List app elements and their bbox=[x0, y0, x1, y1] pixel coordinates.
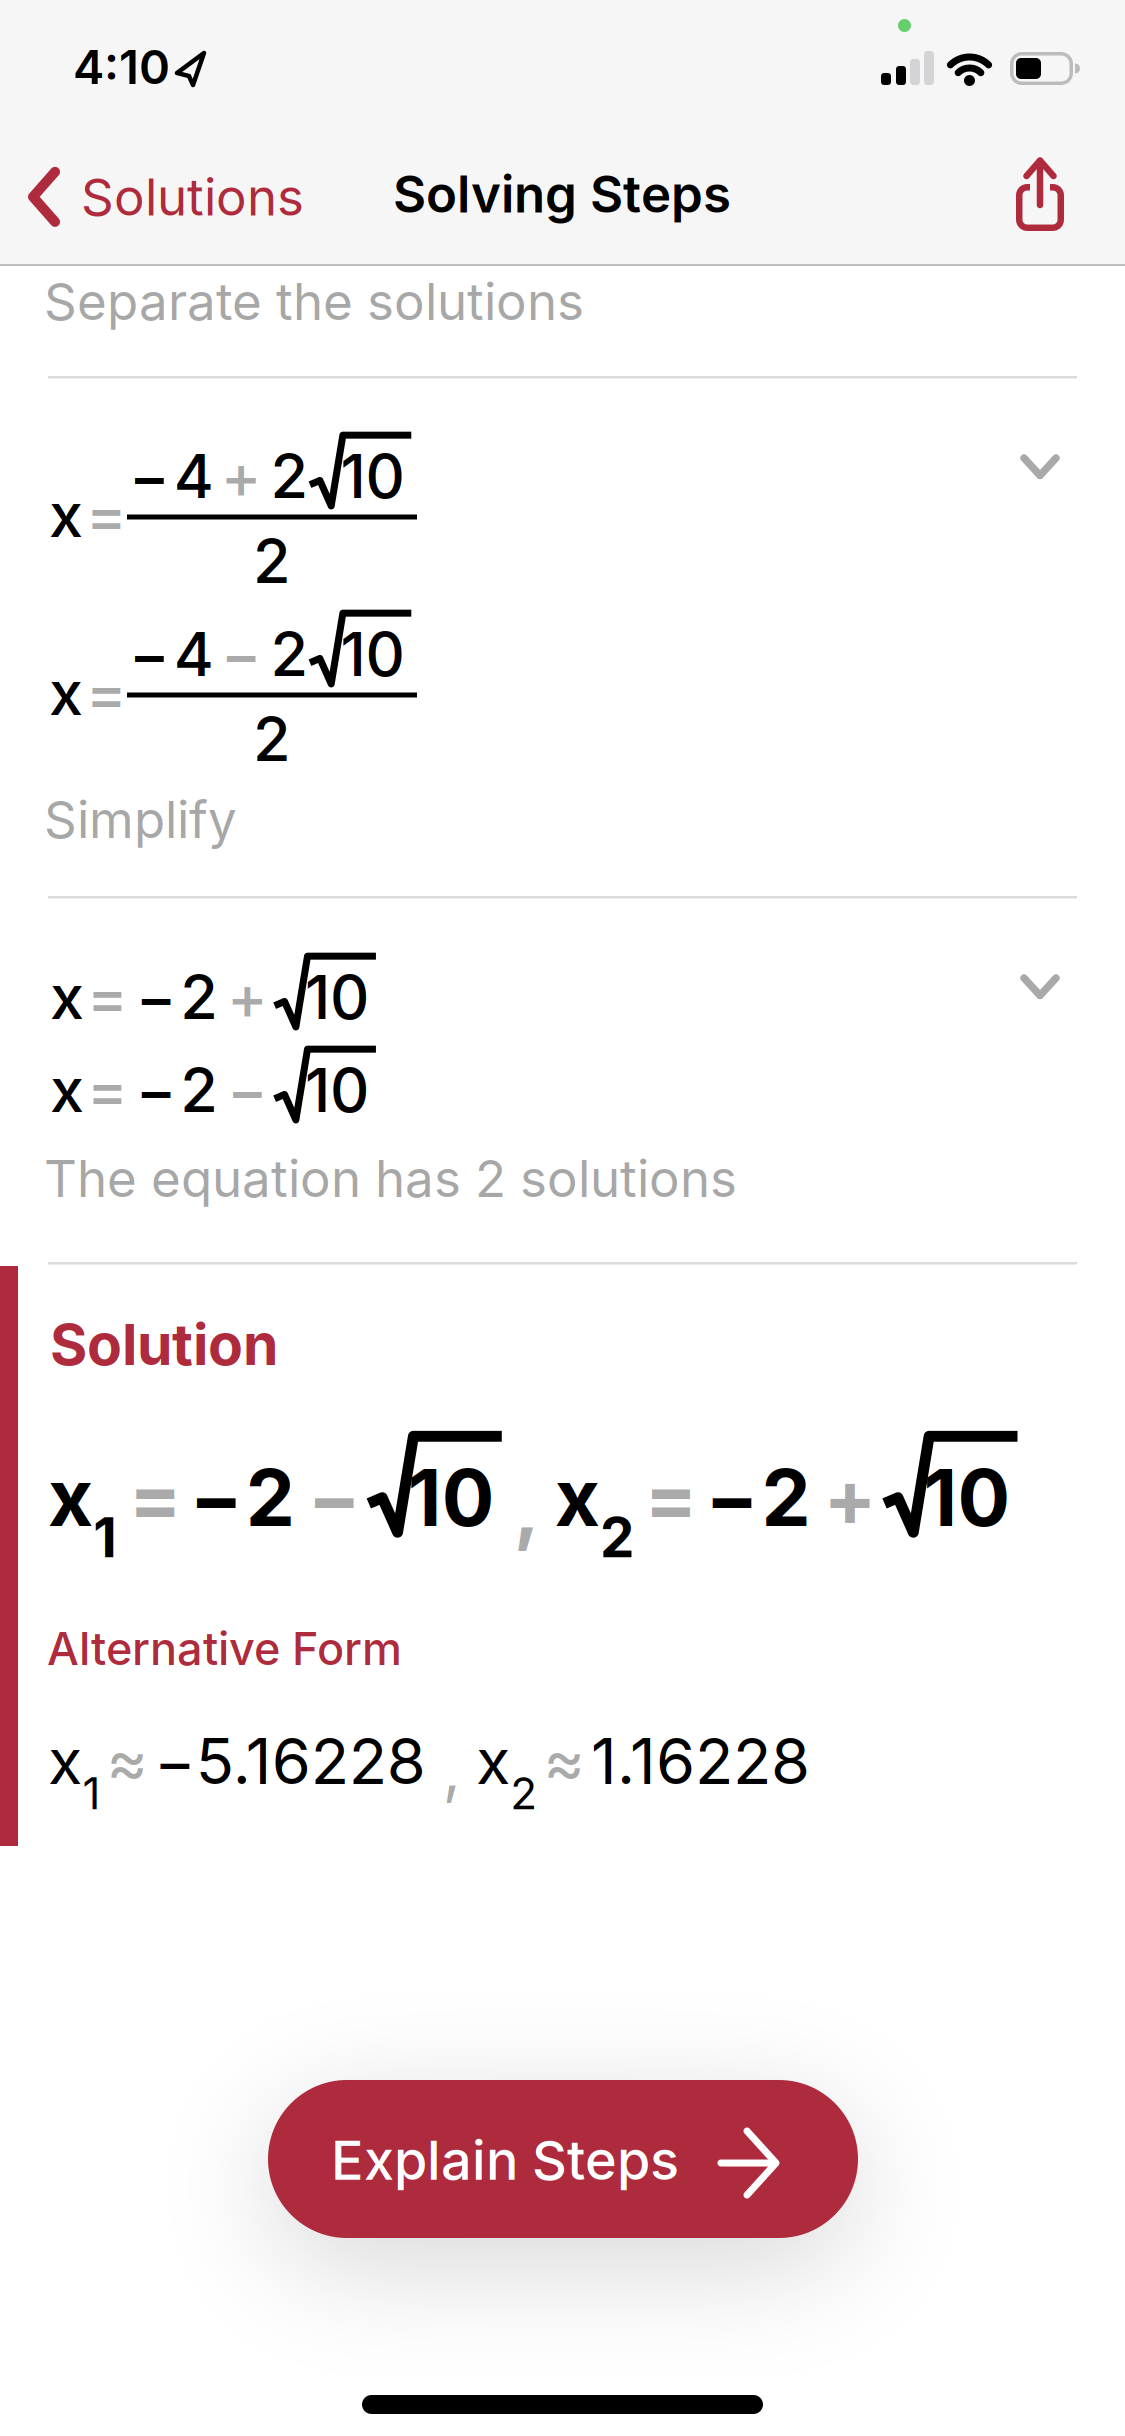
staticText: 2 bbox=[180, 1053, 218, 1127]
staticText: − bbox=[221, 617, 262, 691]
staticText: − bbox=[136, 1053, 177, 1127]
staticText: 10 bbox=[340, 439, 404, 513]
staticText: 4 bbox=[174, 617, 214, 691]
staticText: Separate the solutions bbox=[44, 271, 584, 332]
staticText: 5.16228 bbox=[196, 1723, 426, 1799]
staticText: 2 bbox=[270, 617, 308, 691]
staticText: 2 bbox=[253, 702, 291, 776]
staticText: 2 bbox=[180, 960, 218, 1034]
button[interactable]: Show step details bbox=[1020, 453, 1060, 480]
staticText: 2 bbox=[510, 1766, 537, 1820]
staticText: Solving Steps bbox=[393, 163, 731, 225]
staticText: x bbox=[48, 1723, 82, 1799]
staticText: 4 bbox=[174, 439, 214, 513]
staticText: − bbox=[136, 960, 177, 1034]
staticText: 10 bbox=[923, 1450, 1010, 1545]
staticText: − bbox=[190, 1450, 243, 1545]
button[interactable]: Show step details bbox=[1020, 973, 1060, 1000]
staticText: 1.16228 bbox=[591, 1723, 810, 1799]
staticText: 10 bbox=[305, 1053, 369, 1127]
staticText: = bbox=[86, 478, 127, 552]
staticText: x bbox=[50, 960, 84, 1034]
staticText: 2 bbox=[600, 1504, 634, 1570]
button[interactable]: Explain Steps bbox=[268, 2080, 858, 2238]
staticText: 2 bbox=[761, 1450, 810, 1545]
staticText: Explain Steps bbox=[331, 2127, 679, 2193]
staticText: 1 bbox=[93, 1504, 117, 1570]
staticText: 2 bbox=[246, 1450, 295, 1545]
staticText: + bbox=[227, 960, 268, 1034]
staticText: + bbox=[823, 1450, 876, 1545]
staticText: x bbox=[476, 1723, 510, 1799]
staticText: x bbox=[555, 1450, 600, 1545]
staticText: − bbox=[129, 617, 170, 691]
staticText: x bbox=[48, 1450, 93, 1545]
staticText: ≈ bbox=[106, 1723, 148, 1799]
staticText: The equation has 2 solutions bbox=[44, 1148, 737, 1209]
staticText: = bbox=[644, 1450, 697, 1545]
staticText: 2 bbox=[270, 439, 308, 513]
staticText: = bbox=[86, 656, 127, 730]
staticText: − bbox=[308, 1450, 361, 1545]
staticText: + bbox=[221, 439, 262, 513]
staticText: 10 bbox=[305, 960, 369, 1034]
staticText: 1 bbox=[82, 1766, 100, 1820]
staticText: − bbox=[227, 1053, 268, 1127]
staticText: Alternative Form bbox=[47, 1621, 402, 1676]
staticText: ≈ bbox=[543, 1723, 585, 1799]
staticText: − bbox=[705, 1450, 758, 1545]
staticText: 4:10 bbox=[73, 38, 170, 95]
staticText: x bbox=[49, 478, 83, 552]
staticText: − bbox=[129, 439, 170, 513]
staticText: − bbox=[154, 1723, 196, 1799]
staticText: = bbox=[87, 960, 128, 1034]
staticText: = bbox=[87, 1053, 128, 1127]
staticText: 10 bbox=[408, 1450, 495, 1545]
staticText: 10 bbox=[340, 617, 404, 691]
staticText: x bbox=[50, 1053, 84, 1127]
staticText: , bbox=[514, 1460, 540, 1555]
staticText: Solutions bbox=[81, 166, 304, 228]
button[interactable]: Solutions bbox=[30, 166, 304, 228]
staticText: , bbox=[443, 1731, 461, 1807]
staticText: = bbox=[129, 1450, 182, 1545]
staticText: x bbox=[49, 656, 83, 730]
button[interactable]: Share bbox=[1016, 159, 1064, 231]
staticText: Simplify bbox=[44, 789, 237, 850]
staticText: 2 bbox=[253, 524, 291, 598]
staticText: Solution bbox=[50, 1310, 278, 1379]
